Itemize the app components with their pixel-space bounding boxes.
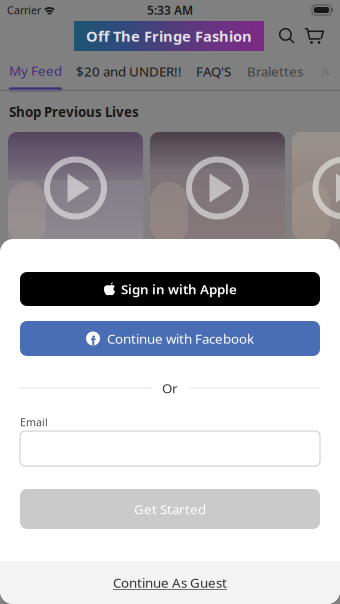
button[interactable]: $20 and UNDER!! [76,52,182,80]
staticText: Continue with Facebook [107,330,254,347]
button[interactable]: Play previous live video [150,132,285,244]
staticText: Carrier [7,3,41,17]
button[interactable]: Sign in with Apple [20,272,320,306]
staticText: Bralettes [247,62,303,80]
button[interactable]: Continue As Guest [0,561,340,604]
staticText: $20 and UNDER!! [76,62,182,80]
staticText: A [321,62,330,80]
staticText: 5:33 AM [147,2,193,18]
button[interactable]: Get Started [20,489,320,529]
button[interactable]: My Feed [9,52,62,90]
button[interactable]: Shopping cart [304,27,324,44]
button[interactable]: Continue with Facebook [20,321,320,356]
staticText: Off The Fringe Fashion [86,26,252,46]
staticText: Or [162,379,178,397]
button[interactable]: FAQ'S [196,52,231,80]
button[interactable]: Search [278,27,296,45]
staticText: FAQ'S [196,62,231,80]
staticText: Shop Previous Lives [9,103,139,121]
button[interactable]: Bralettes [247,52,303,80]
button[interactable]: Play previous live video [8,132,143,244]
staticText: Get Started [134,500,206,518]
staticText: Sign in with Apple [121,280,237,298]
staticText: My Feed [9,62,62,79]
staticText: Continue As Guest [113,574,227,591]
staticText: Email [20,415,48,429]
button[interactable]: Play previous live video [292,132,340,244]
